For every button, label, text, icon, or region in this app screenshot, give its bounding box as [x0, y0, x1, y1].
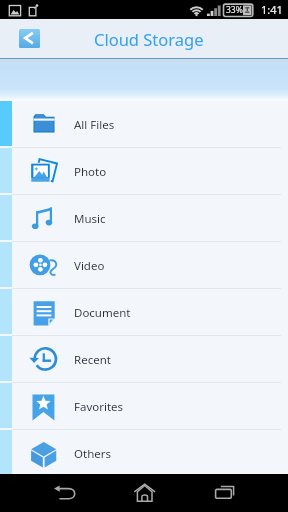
staticText: 1:41 — [261, 2, 283, 17]
staticText: Video — [74, 258, 105, 274]
button[interactable]: Back — [40, 474, 88, 512]
staticText: 33% — [226, 4, 243, 16]
button[interactable]: Recent — [0, 336, 288, 383]
staticText: Others — [74, 446, 111, 462]
button[interactable]: Document — [0, 289, 288, 336]
staticText: Music — [74, 211, 106, 227]
staticText: Favorites — [74, 399, 124, 415]
button[interactable]: Others — [0, 430, 288, 477]
staticText: All Files — [74, 117, 115, 133]
button[interactable]: Recent apps — [200, 474, 248, 512]
staticText: Photo — [74, 164, 107, 180]
button[interactable]: Home — [120, 474, 168, 512]
button[interactable]: Favorites — [0, 383, 288, 430]
staticText: Recent — [74, 352, 111, 368]
staticText: Document — [74, 305, 131, 321]
button[interactable]: Music — [0, 195, 288, 242]
button[interactable]: Video — [0, 242, 288, 289]
button[interactable]: All Files — [0, 101, 288, 148]
staticText: Cloud Storage — [94, 28, 204, 50]
button[interactable]: Back — [19, 29, 40, 48]
button[interactable]: Photo — [0, 148, 288, 195]
